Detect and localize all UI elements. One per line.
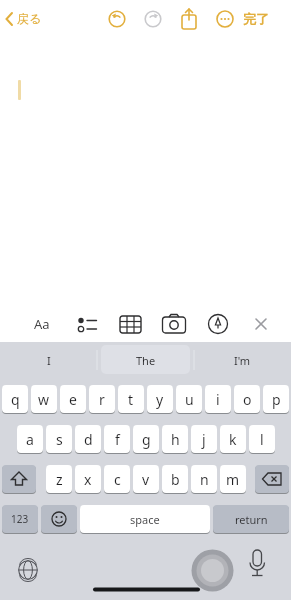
button[interactable]: [203, 309, 233, 339]
button[interactable]: [41, 505, 77, 533]
button[interactable]: j: [191, 425, 217, 453]
button[interactable]: a: [17, 425, 43, 453]
staticText: e: [69, 390, 77, 409]
button[interactable]: [101, 345, 190, 374]
button[interactable]: m: [220, 465, 246, 493]
button[interactable]: c: [104, 465, 130, 493]
button[interactable]: b: [162, 465, 188, 493]
staticText: r: [99, 390, 105, 409]
button[interactable]: [180, 8, 198, 31]
button[interactable]: [143, 9, 163, 29]
staticText: v: [142, 470, 150, 489]
button[interactable]: The: [97, 345, 194, 375]
staticText: t: [128, 390, 134, 409]
button[interactable]: w: [31, 385, 57, 413]
staticText: The: [136, 353, 156, 368]
staticText: 123: [11, 512, 29, 526]
staticText: c: [114, 470, 121, 489]
button[interactable]: x: [75, 465, 101, 493]
staticText: Aa: [34, 315, 50, 333]
button[interactable]: [255, 465, 289, 493]
staticText: m: [226, 470, 240, 489]
button[interactable]: q: [2, 385, 28, 413]
button[interactable]: i: [205, 385, 231, 413]
staticText: o: [243, 390, 252, 409]
button[interactable]: n: [191, 465, 217, 493]
staticText: q: [11, 390, 20, 409]
staticText: w: [38, 390, 50, 409]
button[interactable]: o: [234, 385, 260, 413]
staticText: u: [185, 390, 194, 409]
staticText: space: [130, 512, 160, 527]
staticText: I'm: [234, 353, 251, 368]
staticText: 完了: [243, 11, 269, 27]
button[interactable]: u: [176, 385, 202, 413]
staticText: 戻る: [17, 11, 42, 26]
staticText: b: [171, 470, 180, 489]
button[interactable]: [246, 309, 276, 339]
staticText: a: [26, 430, 34, 449]
button[interactable]: k: [220, 425, 246, 453]
staticText: return: [235, 512, 268, 527]
button[interactable]: d: [75, 425, 101, 453]
button[interactable]: [115, 309, 145, 339]
staticText: z: [56, 470, 63, 489]
staticText: l: [260, 430, 264, 449]
button[interactable]: space: [80, 505, 210, 533]
button[interactable]: l: [249, 425, 275, 453]
button[interactable]: Aa: [24, 309, 60, 339]
button[interactable]: return: [213, 505, 289, 533]
staticText: i: [216, 390, 220, 409]
staticText: x: [84, 470, 92, 489]
button[interactable]: 戻る: [2, 6, 50, 32]
staticText: d: [84, 430, 93, 449]
staticText: n: [200, 470, 209, 489]
button[interactable]: h: [162, 425, 188, 453]
staticText: f: [115, 430, 120, 449]
staticText: h: [171, 430, 180, 449]
staticText: p: [272, 390, 281, 409]
button[interactable]: p: [263, 385, 289, 413]
button[interactable]: z: [46, 465, 72, 493]
button[interactable]: f: [104, 425, 130, 453]
button[interactable]: s: [46, 425, 72, 453]
button[interactable]: y: [147, 385, 173, 413]
button[interactable]: g: [133, 425, 159, 453]
button[interactable]: [158, 309, 190, 339]
button[interactable]: t: [118, 385, 144, 413]
button[interactable]: 完了: [243, 6, 283, 32]
button[interactable]: e: [60, 385, 86, 413]
staticText: y: [156, 390, 164, 409]
staticText: j: [202, 430, 206, 449]
button[interactable]: [72, 309, 102, 339]
button[interactable]: [2, 465, 36, 493]
button[interactable]: I'm: [194, 345, 291, 375]
staticText: I: [47, 353, 51, 368]
button[interactable]: [216, 10, 234, 28]
button[interactable]: 123: [2, 505, 38, 533]
staticText: s: [56, 430, 63, 449]
button[interactable]: I: [0, 345, 97, 375]
staticText: g: [142, 430, 151, 449]
staticText: k: [229, 430, 237, 449]
button[interactable]: v: [133, 465, 159, 493]
button[interactable]: r: [89, 385, 115, 413]
button[interactable]: [107, 9, 127, 29]
